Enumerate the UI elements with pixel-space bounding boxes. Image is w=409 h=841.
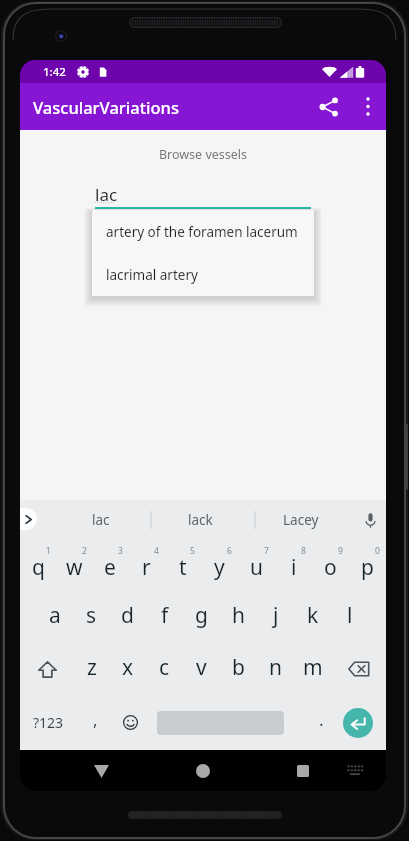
button[interactable]: 8 [275,540,312,592]
staticText: r [142,553,151,582]
staticText: e [104,553,116,582]
button[interactable]: 1 [20,540,56,592]
staticText: 6 [227,545,232,557]
button[interactable]: , [75,695,115,750]
button[interactable]: 7 [238,540,275,592]
staticText: 7 [264,545,269,557]
button[interactable]: b [220,643,257,695]
button[interactable]: g [183,592,220,643]
staticText: lac [95,183,118,206]
staticText: a [49,601,61,630]
staticText: b [232,653,245,682]
button[interactable]: j [257,592,294,643]
button[interactable]: lacrimal artery [92,253,314,296]
button[interactable]: Expand suggestions [20,508,37,530]
staticText: n [269,653,282,682]
staticText: j [273,601,279,630]
staticText: o [324,553,337,582]
staticText: lack [188,511,213,529]
staticText: . [319,708,324,731]
staticText: x [122,653,134,682]
button[interactable]: lac [57,500,145,540]
staticText: q [32,553,45,582]
button[interactable]: l [331,592,368,643]
staticText: lac [92,511,110,529]
button[interactable]: Space [150,695,290,750]
button[interactable]: Recents [282,750,324,791]
button[interactable]: 4 [128,540,164,592]
staticText: 3 [118,545,123,557]
button[interactable]: x [110,643,146,695]
staticText: k [307,601,319,630]
staticText: v [196,653,207,682]
button[interactable]: ?123 [24,695,72,750]
button[interactable]: Back [78,750,124,791]
staticText: VascularVariations [33,96,179,118]
button[interactable]: 9 [312,540,349,592]
staticText: i [291,553,297,582]
button[interactable]: v [183,643,220,695]
button[interactable]: Home [180,750,226,791]
button[interactable]: Emoji [112,695,148,750]
staticText: Lacey [283,511,319,529]
button[interactable]: 0 [349,540,386,592]
button[interactable]: artery of the foramen lacerum [92,210,314,253]
button[interactable]: Enter [340,695,376,750]
button[interactable]: a [37,592,73,643]
staticText: l [347,601,353,630]
button[interactable]: z [74,643,110,695]
button[interactable]: Backspace [331,643,386,695]
button[interactable]: 5 [164,540,201,592]
staticText: 0 [375,545,380,557]
staticText: 1:42 [43,64,66,80]
staticText: t [179,553,187,582]
staticText: 4 [154,545,159,557]
staticText: ?123 [33,713,64,732]
staticText: lacrimal artery [106,266,198,284]
button[interactable]: c [146,643,183,695]
staticText: 2 [82,545,87,557]
button[interactable]: d [109,592,146,643]
button[interactable]: More options [349,88,386,125]
button[interactable]: n [257,643,294,695]
staticText: w [66,553,83,582]
staticText: y [214,553,225,582]
staticText: 1 [46,545,51,557]
staticText: g [195,601,208,630]
staticText: Browse vessels [20,146,386,163]
button[interactable]: Switch keyboard [337,750,373,791]
staticText: u [250,553,263,582]
button[interactable]: Shift [20,643,74,695]
button[interactable]: h [220,592,257,643]
button[interactable]: lack [156,500,244,540]
button[interactable]: . [303,695,339,750]
button[interactable]: 6 [201,540,238,592]
staticText: , [93,708,98,731]
staticText: c [159,653,170,682]
staticText: 8 [301,545,306,557]
staticText: s [86,601,97,630]
staticText: 5 [190,545,195,557]
staticText: h [232,601,245,630]
staticText: z [87,653,97,682]
staticText: p [361,553,374,582]
staticText: 9 [338,545,343,557]
button[interactable]: k [294,592,331,643]
button[interactable]: m [294,643,331,695]
button[interactable]: s [73,592,109,643]
button[interactable]: 3 [92,540,128,592]
button[interactable]: Voice input [356,506,384,534]
button[interactable]: Share [306,84,352,130]
button[interactable]: 2 [56,540,92,592]
staticText: artery of the foramen lacerum [106,223,298,241]
button[interactable]: f [146,592,183,643]
staticText: m [303,653,323,682]
staticText: f [161,601,169,630]
button[interactable]: Lacey [257,500,345,540]
staticText: d [121,601,134,630]
